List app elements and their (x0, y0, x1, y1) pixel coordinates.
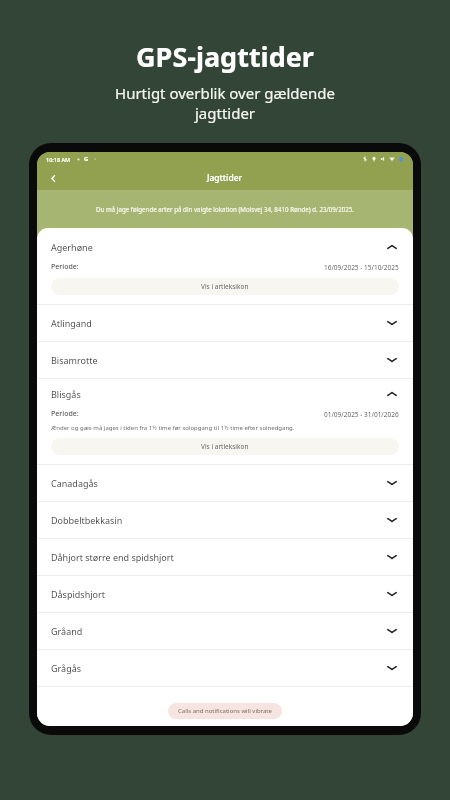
staticText: Agerhøne (51, 241, 93, 253)
staticText: Canadagås (51, 477, 98, 489)
staticText: 10:18 AM (46, 156, 71, 163)
staticText: Dåspidshjort (51, 588, 105, 600)
button[interactable]: Gråand (37, 613, 413, 649)
staticText: Du må jage følgende arter på din valgte … (96, 205, 354, 213)
staticText: 16/09/2025 - 15/10/2025 (324, 263, 399, 272)
staticText: G (84, 155, 89, 163)
button[interactable]: Agerhøne (37, 232, 413, 262)
staticText: Atlingand (51, 317, 92, 329)
button[interactable]: Vis i artleksikon (51, 438, 399, 455)
staticText: Calls and notifications will vibrate (178, 707, 272, 715)
button[interactable]: Bisamrotte (37, 342, 413, 378)
staticText: GPS-jagttider (136, 38, 314, 75)
button[interactable]: Canadagås (37, 465, 413, 501)
staticText: Dåhjort større end spidshjort (51, 551, 174, 563)
staticText: Vis i artleksikon (201, 442, 249, 451)
button[interactable]: Dobbeltbekkasin (37, 502, 413, 538)
button[interactable]: Dåhjort større end spidshjort (37, 539, 413, 575)
button[interactable]: Back (43, 168, 63, 188)
staticText: Ænder og gæs må jages i tiden fra 1½ tim… (51, 424, 295, 432)
button[interactable]: Dåspidshjort (37, 576, 413, 612)
staticText: Jagttider (207, 172, 243, 184)
button[interactable]: Grågås (37, 650, 413, 686)
staticText: Hurtigt overblik over gældende jagttider (115, 83, 335, 123)
staticText: Periode: (51, 409, 79, 419)
staticText: 01/09/2025 - 31/01/2026 (324, 410, 399, 419)
staticText: Grågås (51, 662, 82, 674)
staticText: Periode: (51, 262, 79, 272)
staticText: Blisgås (51, 388, 81, 400)
staticText: Bisamrotte (51, 354, 98, 366)
button[interactable]: Atlingand (37, 305, 413, 341)
staticText: Vis i artleksikon (201, 282, 249, 291)
staticText: Gråand (51, 625, 83, 637)
button[interactable]: Blisgås (37, 379, 413, 409)
staticText: Dobbeltbekkasin (51, 514, 123, 526)
button[interactable]: Vis i artleksikon (51, 278, 399, 295)
